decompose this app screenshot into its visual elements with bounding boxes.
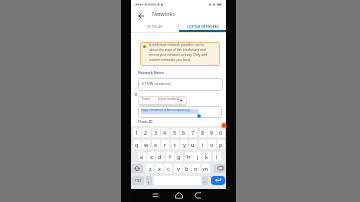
staticText: 9 bbox=[210, 129, 214, 136]
staticText: t bbox=[174, 141, 177, 148]
staticText: r bbox=[164, 141, 167, 148]
staticText: R bbox=[135, 92, 138, 97]
button[interactable]: x bbox=[155, 164, 163, 173]
button[interactable]: y bbox=[180, 140, 188, 149]
button[interactable]: c bbox=[164, 164, 172, 173]
staticText: ?123 bbox=[135, 179, 142, 183]
button[interactable]: 5 bbox=[171, 128, 179, 137]
staticText: 0 bbox=[219, 129, 223, 136]
button[interactable]: l bbox=[213, 152, 221, 161]
staticText: i bbox=[202, 141, 204, 148]
button[interactable]: POPULAR bbox=[131, 22, 179, 32]
button[interactable]: e bbox=[152, 140, 160, 149]
staticText: q bbox=[135, 141, 139, 148]
staticText: o bbox=[210, 141, 214, 148]
staticText: custom networks you trust. bbox=[149, 58, 191, 62]
button[interactable]: p bbox=[217, 140, 225, 149]
staticText: l bbox=[216, 153, 218, 160]
button[interactable]: a bbox=[138, 152, 146, 161]
button[interactable]: f bbox=[166, 152, 174, 161]
button[interactable] bbox=[132, 164, 143, 173]
staticText: a bbox=[140, 153, 144, 160]
button[interactable]: o bbox=[208, 140, 216, 149]
staticText: b bbox=[185, 165, 189, 172]
staticText: v bbox=[177, 165, 180, 172]
staticText: j bbox=[197, 153, 199, 160]
button[interactable]: 0 bbox=[217, 128, 225, 137]
button[interactable]: i bbox=[199, 140, 207, 149]
staticText: n bbox=[194, 165, 198, 172]
staticText: 8 bbox=[201, 129, 205, 136]
staticText: d bbox=[158, 153, 162, 160]
button[interactable] bbox=[138, 106, 222, 118]
staticText: c bbox=[167, 165, 170, 172]
button[interactable]: 1 bbox=[133, 128, 141, 137]
staticText: 1 bbox=[135, 129, 139, 136]
staticText: CUSTOM NETWORKS bbox=[187, 25, 219, 29]
button[interactable]: n bbox=[192, 164, 200, 173]
staticText: 4 bbox=[163, 129, 167, 136]
button[interactable]: r bbox=[161, 140, 169, 149]
staticText: x bbox=[158, 165, 161, 172]
staticText: u bbox=[191, 141, 195, 148]
button[interactable]: 8 bbox=[199, 128, 207, 137]
button[interactable]: 4 bbox=[161, 128, 169, 137]
staticText: h bbox=[187, 153, 191, 160]
button[interactable] bbox=[211, 176, 225, 185]
staticText: ETHW mainnet bbox=[142, 81, 171, 86]
button[interactable]: 9 bbox=[208, 128, 216, 137]
staticText: about the state of the blockchain and bbox=[149, 48, 206, 52]
staticText: 2 bbox=[144, 129, 148, 136]
button[interactable]: w bbox=[142, 140, 150, 149]
button[interactable]: v bbox=[174, 164, 182, 173]
button[interactable] bbox=[138, 13, 145, 19]
staticText: g bbox=[177, 153, 181, 160]
staticText: Input method bbox=[158, 97, 179, 101]
staticText: , bbox=[148, 177, 150, 184]
button[interactable]: CUSTOM NETWORKS bbox=[179, 22, 227, 32]
staticText: 6 bbox=[182, 129, 186, 136]
staticText: 3 bbox=[154, 129, 158, 136]
button[interactable]: m bbox=[202, 164, 210, 173]
button[interactable]: u bbox=[189, 140, 197, 149]
button[interactable] bbox=[138, 96, 187, 105]
button[interactable] bbox=[149, 190, 161, 201]
button[interactable]: 3 bbox=[152, 128, 160, 137]
button[interactable]: , bbox=[146, 176, 152, 185]
button[interactable]: h bbox=[185, 152, 193, 161]
staticText: w bbox=[144, 141, 149, 148]
button[interactable]: j bbox=[194, 152, 202, 161]
staticText: Paste bbox=[142, 97, 151, 101]
staticText: record your network activity. Only add bbox=[149, 53, 208, 57]
staticText: m bbox=[203, 165, 209, 172]
button[interactable]: ?123 bbox=[132, 176, 144, 185]
button[interactable]: t bbox=[171, 140, 179, 149]
staticText: 5 bbox=[173, 129, 177, 136]
button[interactable] bbox=[192, 190, 204, 201]
staticText: f bbox=[169, 153, 171, 160]
button[interactable] bbox=[214, 164, 225, 173]
button[interactable]: d bbox=[156, 152, 164, 161]
staticText: e bbox=[154, 141, 158, 148]
button[interactable]: k bbox=[203, 152, 211, 161]
button[interactable]: 7 bbox=[189, 128, 197, 137]
button[interactable]: q bbox=[133, 140, 141, 149]
staticText: 7 bbox=[191, 129, 195, 136]
staticText: . bbox=[204, 177, 206, 184]
staticText: POPULAR bbox=[147, 25, 163, 29]
button[interactable]: b bbox=[183, 164, 191, 173]
staticText: Network Name bbox=[138, 70, 165, 75]
button[interactable]: s bbox=[147, 152, 155, 161]
button[interactable]: 6 bbox=[180, 128, 188, 137]
staticText: Chain ID bbox=[138, 119, 153, 124]
staticText: p bbox=[219, 141, 223, 148]
button[interactable]: z bbox=[146, 164, 154, 173]
staticText: https://mainnet.ethereumpow.org bbox=[141, 108, 190, 112]
button[interactable] bbox=[138, 78, 223, 91]
staticText: y bbox=[183, 141, 186, 148]
button[interactable]: . bbox=[202, 176, 208, 185]
button[interactable] bbox=[173, 190, 185, 201]
button[interactable]: 2 bbox=[142, 128, 150, 137]
button[interactable]: g bbox=[175, 152, 183, 161]
